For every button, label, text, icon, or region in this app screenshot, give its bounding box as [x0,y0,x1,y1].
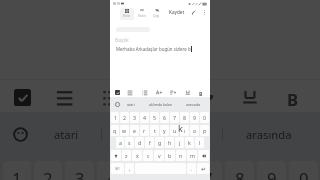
staticText: 8 [235,167,245,180]
button[interactable]: Kaydet [168,8,186,16]
button[interactable]: arasında [186,102,201,107]
button[interactable]: aklımda kalan [125,127,199,142]
button[interactable]: w [120,125,129,136]
button[interactable]: 0 [289,161,318,180]
button[interactable]: o [190,125,199,136]
staticText: x [136,152,139,159]
button[interactable]: b [165,150,175,161]
button[interactable]: q [111,125,119,136]
button[interactable]: e [130,125,139,136]
button[interactable]: Emoji [114,101,120,107]
button[interactable]: Bold [198,90,204,96]
button[interactable]: 7 [170,112,179,123]
button[interactable] [111,150,121,161]
button[interactable]: 2 [34,161,62,180]
button[interactable]: arasında [246,127,292,142]
button[interactable]: m [187,150,197,161]
button[interactable]: Bulleted list [126,89,134,97]
button[interactable]: p [200,125,209,136]
button[interactable]: Metin [120,8,134,20]
button[interactable]: y [160,125,169,136]
staticText: 1 [12,167,22,180]
button[interactable]: c [143,150,153,161]
button[interactable]: j [175,137,184,148]
button[interactable]: 5 [129,161,158,180]
button[interactable]: 4 [140,112,149,123]
button[interactable]: aklımda kalan [149,102,172,107]
staticText: n [179,152,183,159]
button[interactable] [198,150,209,161]
button[interactable]: 0 [200,112,209,123]
button[interactable]: More options [200,8,208,16]
staticText: Kaydet [169,9,185,15]
button[interactable]: t [150,125,159,136]
staticText: b [168,152,172,159]
button[interactable]: a [116,137,124,148]
button[interactable]: 2 [120,112,129,123]
button[interactable]: 6 [160,112,169,123]
button[interactable]: g [155,137,164,148]
button[interactable]: Alignment [190,85,216,111]
staticText: w [122,127,127,134]
button[interactable]: 4 [97,161,126,180]
button[interactable]: h [165,137,174,148]
button[interactable] [197,163,209,174]
button[interactable]: u [170,125,179,136]
button[interactable]: !#1 [111,163,124,174]
button[interactable]: 7 [193,161,222,180]
button[interactable]: Alignment [169,89,177,97]
button[interactable]: f [145,137,154,148]
button[interactable]: ı [180,125,189,136]
staticText: , [129,165,131,172]
button[interactable]: Emoji [11,125,30,144]
button[interactable]: s [125,137,134,148]
button[interactable]: 3 [65,161,94,180]
button[interactable]: Text size [155,89,163,97]
staticText: ı [184,127,186,134]
staticText: 4 [107,167,117,180]
button[interactable]: r [140,125,149,136]
button[interactable]: Bold [283,88,302,107]
button[interactable]: Checklist [14,89,31,106]
button[interactable]: Resim [135,8,149,20]
button[interactable]: z [122,150,131,161]
button[interactable]: k [185,137,194,148]
button[interactable]: x [132,150,142,161]
button[interactable]: 5 [150,112,159,123]
button[interactable]: 9 [190,112,199,123]
button[interactable]: Text size [144,85,170,111]
staticText: f [149,139,151,146]
button[interactable]: , [125,163,134,174]
button[interactable]: 8 [225,161,254,180]
staticText: 7 [173,114,176,121]
staticText: h [168,139,172,146]
button[interactable]: Bulleted list [51,85,77,111]
button[interactable]: . [187,163,196,174]
staticText: a [119,139,122,146]
staticText: k [178,122,183,134]
button[interactable]: 1 [111,112,119,123]
button[interactable]: 3 [130,112,139,123]
button[interactable]: 6 [161,161,190,180]
button[interactable]: l [195,137,204,148]
button[interactable]: Numbered list [98,85,124,111]
button[interactable]: Attach [189,8,197,16]
staticText: p [203,127,207,134]
button[interactable]: Çizgi [149,8,163,20]
button[interactable]: atari [54,127,79,142]
button[interactable]: n [176,150,186,161]
button[interactable]: Checklist [115,90,120,95]
button[interactable]: Underline [184,89,192,97]
button[interactable]: atari [127,102,135,107]
button[interactable]: v [154,150,164,161]
staticText: Metin [123,14,131,18]
staticText: 0 [299,167,309,180]
button[interactable]: 1 [3,161,31,180]
button[interactable]: Underline [237,85,263,111]
button[interactable]: d [135,137,144,148]
button[interactable]: 8 [180,112,189,123]
button[interactable]: Numbered list [141,89,149,97]
staticText: j [179,139,181,146]
button[interactable]: 9 [257,161,286,180]
